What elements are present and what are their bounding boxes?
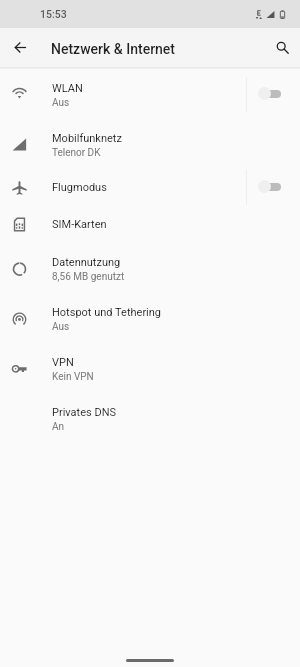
staticText: VPN	[52, 356, 74, 369]
staticText: SIM-Karten	[52, 218, 107, 231]
staticText: 8,56 MB genutzt	[52, 271, 125, 283]
staticText: 15:53	[40, 8, 67, 20]
button[interactable]: Zurück	[0, 28, 40, 67]
button[interactable]: Privates DNS	[0, 393, 300, 443]
button[interactable]: Suchen	[265, 28, 300, 67]
button[interactable]: SIM-Karten	[0, 206, 300, 243]
button[interactable]: Flugmodus	[0, 169, 300, 206]
button[interactable]: WLAN	[0, 69, 300, 119]
button[interactable]: Datennutzung	[0, 243, 300, 293]
button[interactable]: Mobilfunknetz	[0, 119, 300, 169]
button[interactable]: Hotspot und Tethering	[0, 293, 300, 343]
staticText: Kein VPN	[52, 371, 94, 383]
button[interactable]: Flugmodus Schalter	[247, 169, 300, 206]
staticText: An	[52, 421, 65, 433]
staticText: Hotspot und Tethering	[52, 306, 162, 319]
staticText: Mobilfunknetz	[52, 132, 122, 145]
staticText: Aus	[52, 97, 70, 109]
staticText: Aus	[52, 321, 70, 333]
staticText: Telenor DK	[52, 147, 101, 159]
button[interactable]: WLAN Schalter	[247, 69, 300, 119]
staticText: Flugmodus	[52, 181, 107, 194]
staticText: WLAN	[52, 82, 83, 95]
staticText: Netzwerk & Internet	[51, 41, 265, 57]
button[interactable]: VPN	[0, 343, 300, 393]
staticText: Datennutzung	[52, 256, 121, 269]
staticText: Privates DNS	[52, 406, 117, 419]
